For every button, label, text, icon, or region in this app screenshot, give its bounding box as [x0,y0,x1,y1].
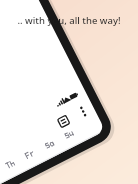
button[interactable]: .. with you, all the way! [6,14,132,27]
staticText: .. with you, all the way! [6,14,132,27]
button[interactable]: Tablet preview of calendar app [0,0,138,184]
